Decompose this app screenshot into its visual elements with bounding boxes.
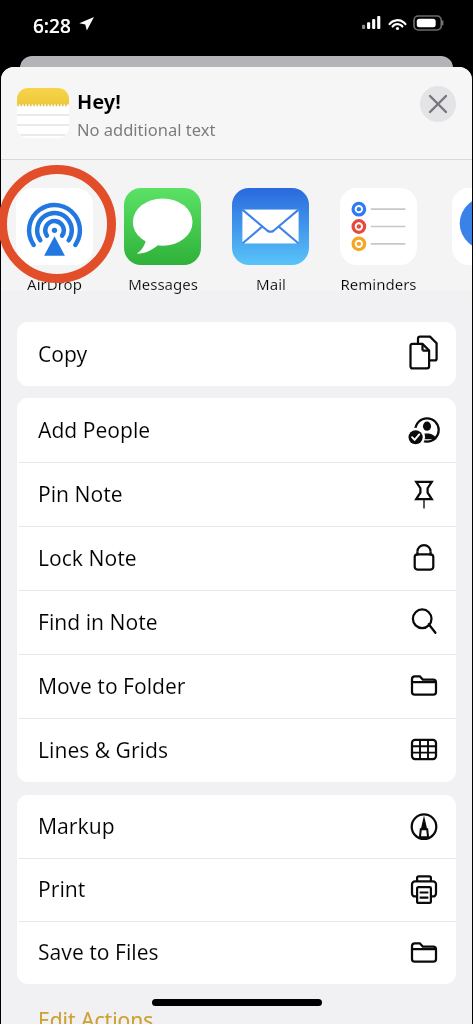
staticText: Edit Actions...: [38, 1006, 171, 1024]
staticText: Mail: [256, 274, 286, 294]
button[interactable]: Messages: [124, 188, 201, 294]
button[interactable]: Move to Folder: [17, 654, 456, 718]
staticText: Print: [38, 875, 409, 904]
button[interactable]: Pin Note: [17, 462, 456, 526]
staticText: Copy: [38, 340, 409, 369]
button[interactable]: AirDrop: [16, 188, 93, 294]
staticText: No additional text: [77, 118, 216, 140]
button[interactable]: Find in Note: [17, 590, 456, 654]
staticText: Reminders: [340, 274, 417, 294]
staticText: AirDrop: [27, 274, 82, 294]
staticText: Lines & Grids: [38, 736, 409, 765]
staticText: Find in Note: [38, 608, 409, 637]
button[interactable]: Print: [17, 858, 456, 921]
staticText: Hey!: [77, 88, 121, 115]
staticText: Lock Note: [38, 544, 409, 573]
staticText: Save to Files: [38, 938, 409, 967]
button[interactable]: Lines & Grids: [17, 718, 456, 782]
button[interactable]: Reminders: [340, 188, 417, 294]
button[interactable]: Close: [420, 86, 456, 122]
button[interactable]: Add People: [17, 398, 456, 462]
staticText: 6:28: [33, 13, 71, 39]
button[interactable]: Mail: [232, 188, 309, 294]
staticText: Move to Folder: [38, 672, 409, 701]
staticText: Add People: [38, 416, 409, 445]
button[interactable]: Me: [452, 188, 472, 294]
button[interactable]: Save to Files: [17, 921, 456, 984]
button[interactable]: Copy: [17, 322, 456, 386]
button[interactable]: Markup: [17, 795, 456, 858]
staticText: Markup: [38, 812, 409, 841]
staticText: Pin Note: [38, 480, 409, 509]
staticText: Messages: [128, 274, 198, 294]
button[interactable]: Lock Note: [17, 526, 456, 590]
